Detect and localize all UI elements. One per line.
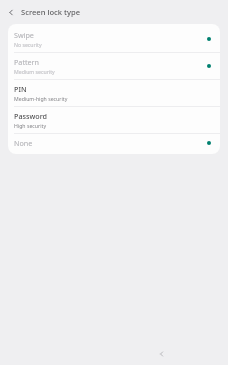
- button[interactable]: None: [8, 134, 220, 152]
- staticText: Screen lock type: [21, 7, 81, 17]
- button[interactable]: Swipe: [8, 26, 220, 52]
- staticText: Medium-high security: [14, 95, 68, 102]
- button[interactable]: Back: [4, 5, 18, 19]
- staticText: No security: [14, 41, 42, 48]
- staticText: Swipe: [14, 30, 34, 40]
- staticText: PIN: [14, 84, 27, 94]
- staticText: Medium security: [14, 68, 55, 75]
- staticText: High security: [14, 122, 47, 129]
- button[interactable]: Back: [155, 347, 169, 361]
- staticText: None: [14, 138, 33, 148]
- button[interactable]: Password: [8, 107, 220, 133]
- staticText: Password: [14, 111, 48, 121]
- staticText: Pattern: [14, 57, 40, 67]
- button[interactable]: PIN: [8, 80, 220, 106]
- button[interactable]: Pattern: [8, 53, 220, 79]
